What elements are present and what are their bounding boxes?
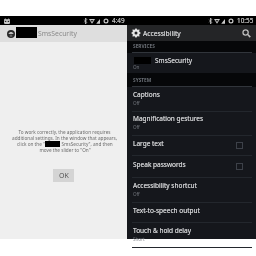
staticText: Text-to-speech output <box>133 206 200 215</box>
button[interactable]: SmsSecurity <box>127 53 256 73</box>
staticText: 4:49 <box>112 16 125 25</box>
staticText: SERVICES <box>133 43 155 50</box>
staticText: Off <box>133 100 140 106</box>
staticText: Large text <box>133 139 164 148</box>
staticText: Off <box>133 191 140 197</box>
button[interactable]: Large text <box>127 136 256 155</box>
staticText: Accessibility shortcut <box>133 181 197 190</box>
button[interactable]: Search <box>239 26 253 40</box>
staticText: Accessibility <box>143 29 181 38</box>
staticText: additional settings. In the window that … <box>12 135 117 141</box>
staticText: Speak passwords <box>133 160 186 169</box>
staticText: On <box>133 64 140 70</box>
staticText: Short <box>133 236 145 242</box>
button[interactable]: Accessibility <box>127 25 256 41</box>
staticText: 10:55 <box>237 16 254 25</box>
staticText: move the slider to "On" <box>39 147 91 153</box>
button[interactable]: Touch & hold delay <box>127 223 256 247</box>
staticText: SmsSecurity <box>155 56 193 65</box>
staticText: click on the " <box>17 141 45 147</box>
staticText: Touch & hold delay <box>133 226 191 235</box>
button[interactable]: Magnification gestures <box>127 112 256 135</box>
button[interactable]: Captions <box>127 87 256 111</box>
button[interactable]: Text-to-speech output <box>127 203 256 222</box>
button[interactable]: Accessibility shortcut <box>127 178 256 202</box>
button[interactable]: OK <box>53 169 74 182</box>
staticText: OK <box>59 171 69 181</box>
staticText: Off <box>133 124 140 130</box>
staticText: SmsSecurity", and then <box>60 141 113 147</box>
staticText: Captions <box>133 90 160 99</box>
staticText: Magnification gestures <box>133 114 204 123</box>
button[interactable]: SmsSecurity <box>0 25 127 42</box>
button[interactable]: Speak passwords <box>127 156 256 177</box>
staticText: SYSTEM <box>133 77 152 84</box>
staticText: SmsSecurity <box>38 29 77 38</box>
staticText: To work correctly, the application requi… <box>18 129 111 135</box>
